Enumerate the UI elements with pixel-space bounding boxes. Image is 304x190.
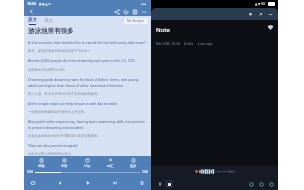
button[interactable]: More: [139, 7, 148, 16]
button[interactable]: Play: [83, 178, 93, 188]
staticText: Along with other experts say, having bas…: [28, 119, 148, 130]
button[interactable]: Minimize: [266, 10, 274, 18]
staticText: 游泳池里有很多: [28, 27, 74, 35]
staticText: 具备基本的游泳技能对于预防溺水是非常重要的。: [28, 134, 101, 138]
button[interactable]: 口语: [82, 157, 93, 169]
button[interactable]: Premium: [266, 23, 275, 32]
button[interactable]: Send: [267, 180, 275, 188]
button[interactable]: History: [121, 7, 130, 16]
staticText: 精读: [38, 164, 45, 168]
staticText: ▬▬: [141, 2, 147, 5]
staticText: 0:08: [27, 170, 33, 174]
staticText: In the summer, how families like to spen…: [28, 40, 146, 45]
button[interactable]: Stop: [165, 180, 173, 188]
staticText: 0:09: [229, 170, 235, 174]
staticText: Drowning peak drowning rates for black c…: [28, 77, 148, 88]
button[interactable]: Mr. Rockyer: [124, 18, 148, 24]
staticText: 2:58: [142, 170, 148, 174]
staticText: Note: [156, 26, 171, 34]
button[interactable]: Previous: [55, 178, 65, 188]
staticText: 原文: [28, 17, 37, 23]
staticText: 一些简单的措施有助于确保水上安全的。: [28, 110, 88, 114]
button[interactable]: Next: [110, 178, 120, 188]
staticText: 黑人儿童、青少年的溺水率高于其他种族和族裔。: [28, 92, 101, 96]
button[interactable]: List: [137, 178, 147, 188]
staticText: ▲ ▼ 5G: [255, 2, 266, 6]
staticText: 泛听: [61, 164, 68, 168]
button[interactable]: Attach: [247, 180, 255, 188]
button[interactable]: Save: [130, 7, 139, 16]
button[interactable]: 精读: [36, 157, 47, 169]
button[interactable]: 更多: [128, 157, 139, 169]
staticText: 译文: [44, 18, 53, 24]
button[interactable]: Expand: [256, 10, 264, 18]
staticText: 夏天，家庭喜欢如何度过炎热的下午时光？: [28, 49, 91, 53]
staticText: A few simple steps can help ensure a saf…: [28, 101, 118, 106]
staticText: 10:24: [27, 1, 36, 6]
button[interactable]: Premium: [246, 10, 254, 18]
staticText: Almost 4,000 people die from drowning ea…: [28, 58, 137, 63]
staticText: Mr. Rockyer: [127, 19, 145, 23]
staticText: ■ ● ▲ ✉: [39, 2, 51, 6]
staticText: 美国每年有近4000人溺水。: [28, 67, 69, 72]
button[interactable]: Back: [27, 7, 36, 16]
staticText: 口语: [84, 164, 91, 168]
staticText: That can also prevent tragedy!: [28, 143, 78, 148]
button[interactable]: Comment: [257, 180, 265, 188]
button[interactable]: 译文: [44, 18, 53, 24]
button[interactable]: 词汇: [105, 157, 116, 169]
button[interactable]: Pause: [156, 180, 163, 187]
staticText: 更多: [130, 164, 137, 168]
staticText: 这也可以防止悲剧的再次发生。: [28, 152, 75, 156]
staticText: 词汇: [107, 164, 114, 168]
staticText: Mar 2025, 20:34 Drafts 3 min ago: [156, 42, 213, 46]
button[interactable]: Speed: [28, 178, 38, 188]
button[interactable]: 泛听: [59, 157, 70, 169]
button[interactable]: 原文: [28, 17, 37, 25]
button[interactable]: Share: [112, 7, 121, 16]
